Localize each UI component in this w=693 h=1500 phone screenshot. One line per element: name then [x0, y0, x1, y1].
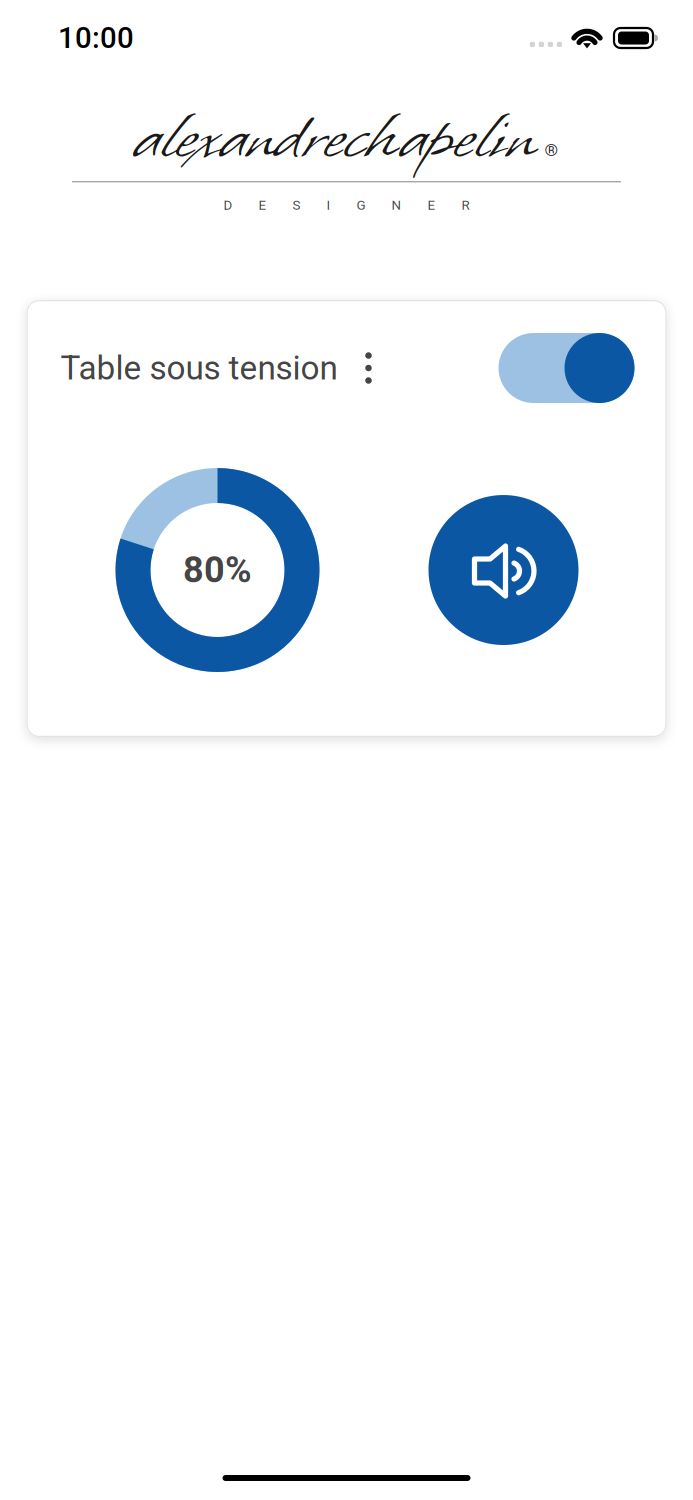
button[interactable]: Table sous tension — [498, 332, 634, 404]
staticText: Table sous tension — [60, 348, 337, 388]
button[interactable]: Sound — [428, 495, 578, 645]
staticText: 80% — [183, 549, 252, 591]
staticText: alexandrechapelin — [131, 88, 533, 187]
button[interactable]: More options — [346, 342, 390, 394]
staticText: ® — [544, 140, 558, 160]
staticText: D E S I G N E R — [223, 197, 469, 213]
staticText: 10:00 — [58, 21, 134, 55]
